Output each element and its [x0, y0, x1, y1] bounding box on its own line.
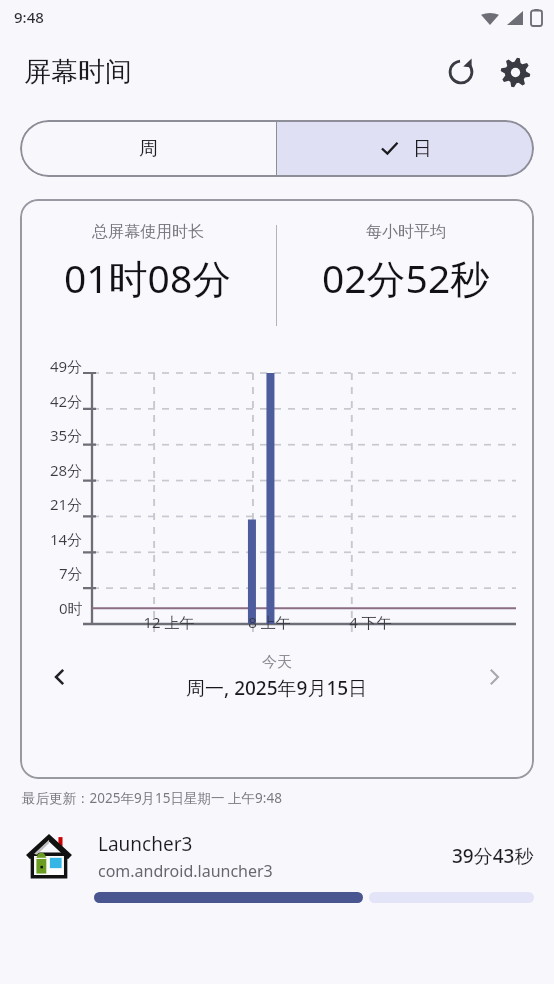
staticText: 最后更新：2025年9月15日星期一 上午9:48 [22, 789, 282, 807]
staticText: 日 [413, 137, 432, 161]
button[interactable]: Launcher3 [0, 825, 554, 903]
staticText: 周一, 2025年9月15日 [186, 675, 368, 701]
staticText: 4 下午 [349, 612, 392, 632]
staticText: 42分 [50, 391, 83, 411]
staticText: 39分43秒 [452, 843, 534, 869]
staticText: 28分 [50, 460, 83, 480]
button[interactable]: 设置 [490, 47, 540, 97]
staticText: 02分52秒 [322, 251, 490, 304]
staticText: 今天 [262, 653, 292, 672]
staticText: 周 [139, 137, 158, 161]
staticText: 21分 [50, 494, 83, 514]
staticText: 0时 [59, 598, 83, 618]
staticText: 9:48 [14, 7, 44, 27]
staticText: 01时08分 [64, 251, 232, 304]
button[interactable]: 前一天 [32, 649, 88, 705]
button[interactable]: 刷新 [436, 47, 486, 97]
button[interactable]: 周 [20, 120, 276, 177]
staticText: 49分 [50, 356, 83, 376]
button[interactable]: 日 [277, 120, 534, 177]
staticText: 8 上午 [248, 612, 291, 632]
button[interactable]: 后一天 [466, 649, 522, 705]
staticText: 屏幕时间 [24, 55, 132, 89]
staticText: 12 上午 [143, 612, 195, 632]
staticText: 7分 [59, 563, 83, 583]
staticText: Launcher3 [98, 831, 193, 857]
staticText: 14分 [50, 529, 83, 549]
staticText: com.android.launcher3 [98, 860, 273, 882]
staticText: 35分 [50, 425, 83, 445]
staticText: 每小时平均 [366, 222, 446, 242]
staticText: 总屏幕使用时长 [92, 222, 204, 242]
